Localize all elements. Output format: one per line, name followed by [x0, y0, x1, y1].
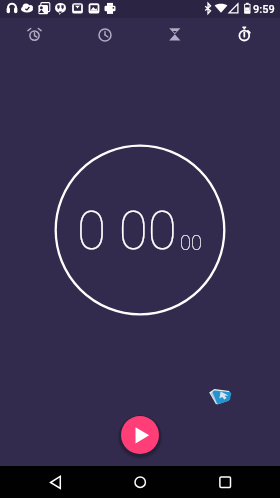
staticText: 9:59 — [253, 3, 275, 16]
button[interactable]: Stopwatch — [210, 18, 280, 52]
button[interactable]: Home — [122, 466, 158, 498]
staticText: 00 — [180, 231, 202, 254]
staticText: 0 00 — [77, 200, 177, 262]
button[interactable]: Clock — [70, 18, 140, 52]
button[interactable]: Recent apps — [207, 466, 243, 498]
button[interactable]: Start — [121, 416, 159, 454]
button[interactable]: Back — [39, 466, 75, 498]
button[interactable]: Timer — [140, 18, 210, 52]
button[interactable]: Alarm — [0, 18, 70, 52]
